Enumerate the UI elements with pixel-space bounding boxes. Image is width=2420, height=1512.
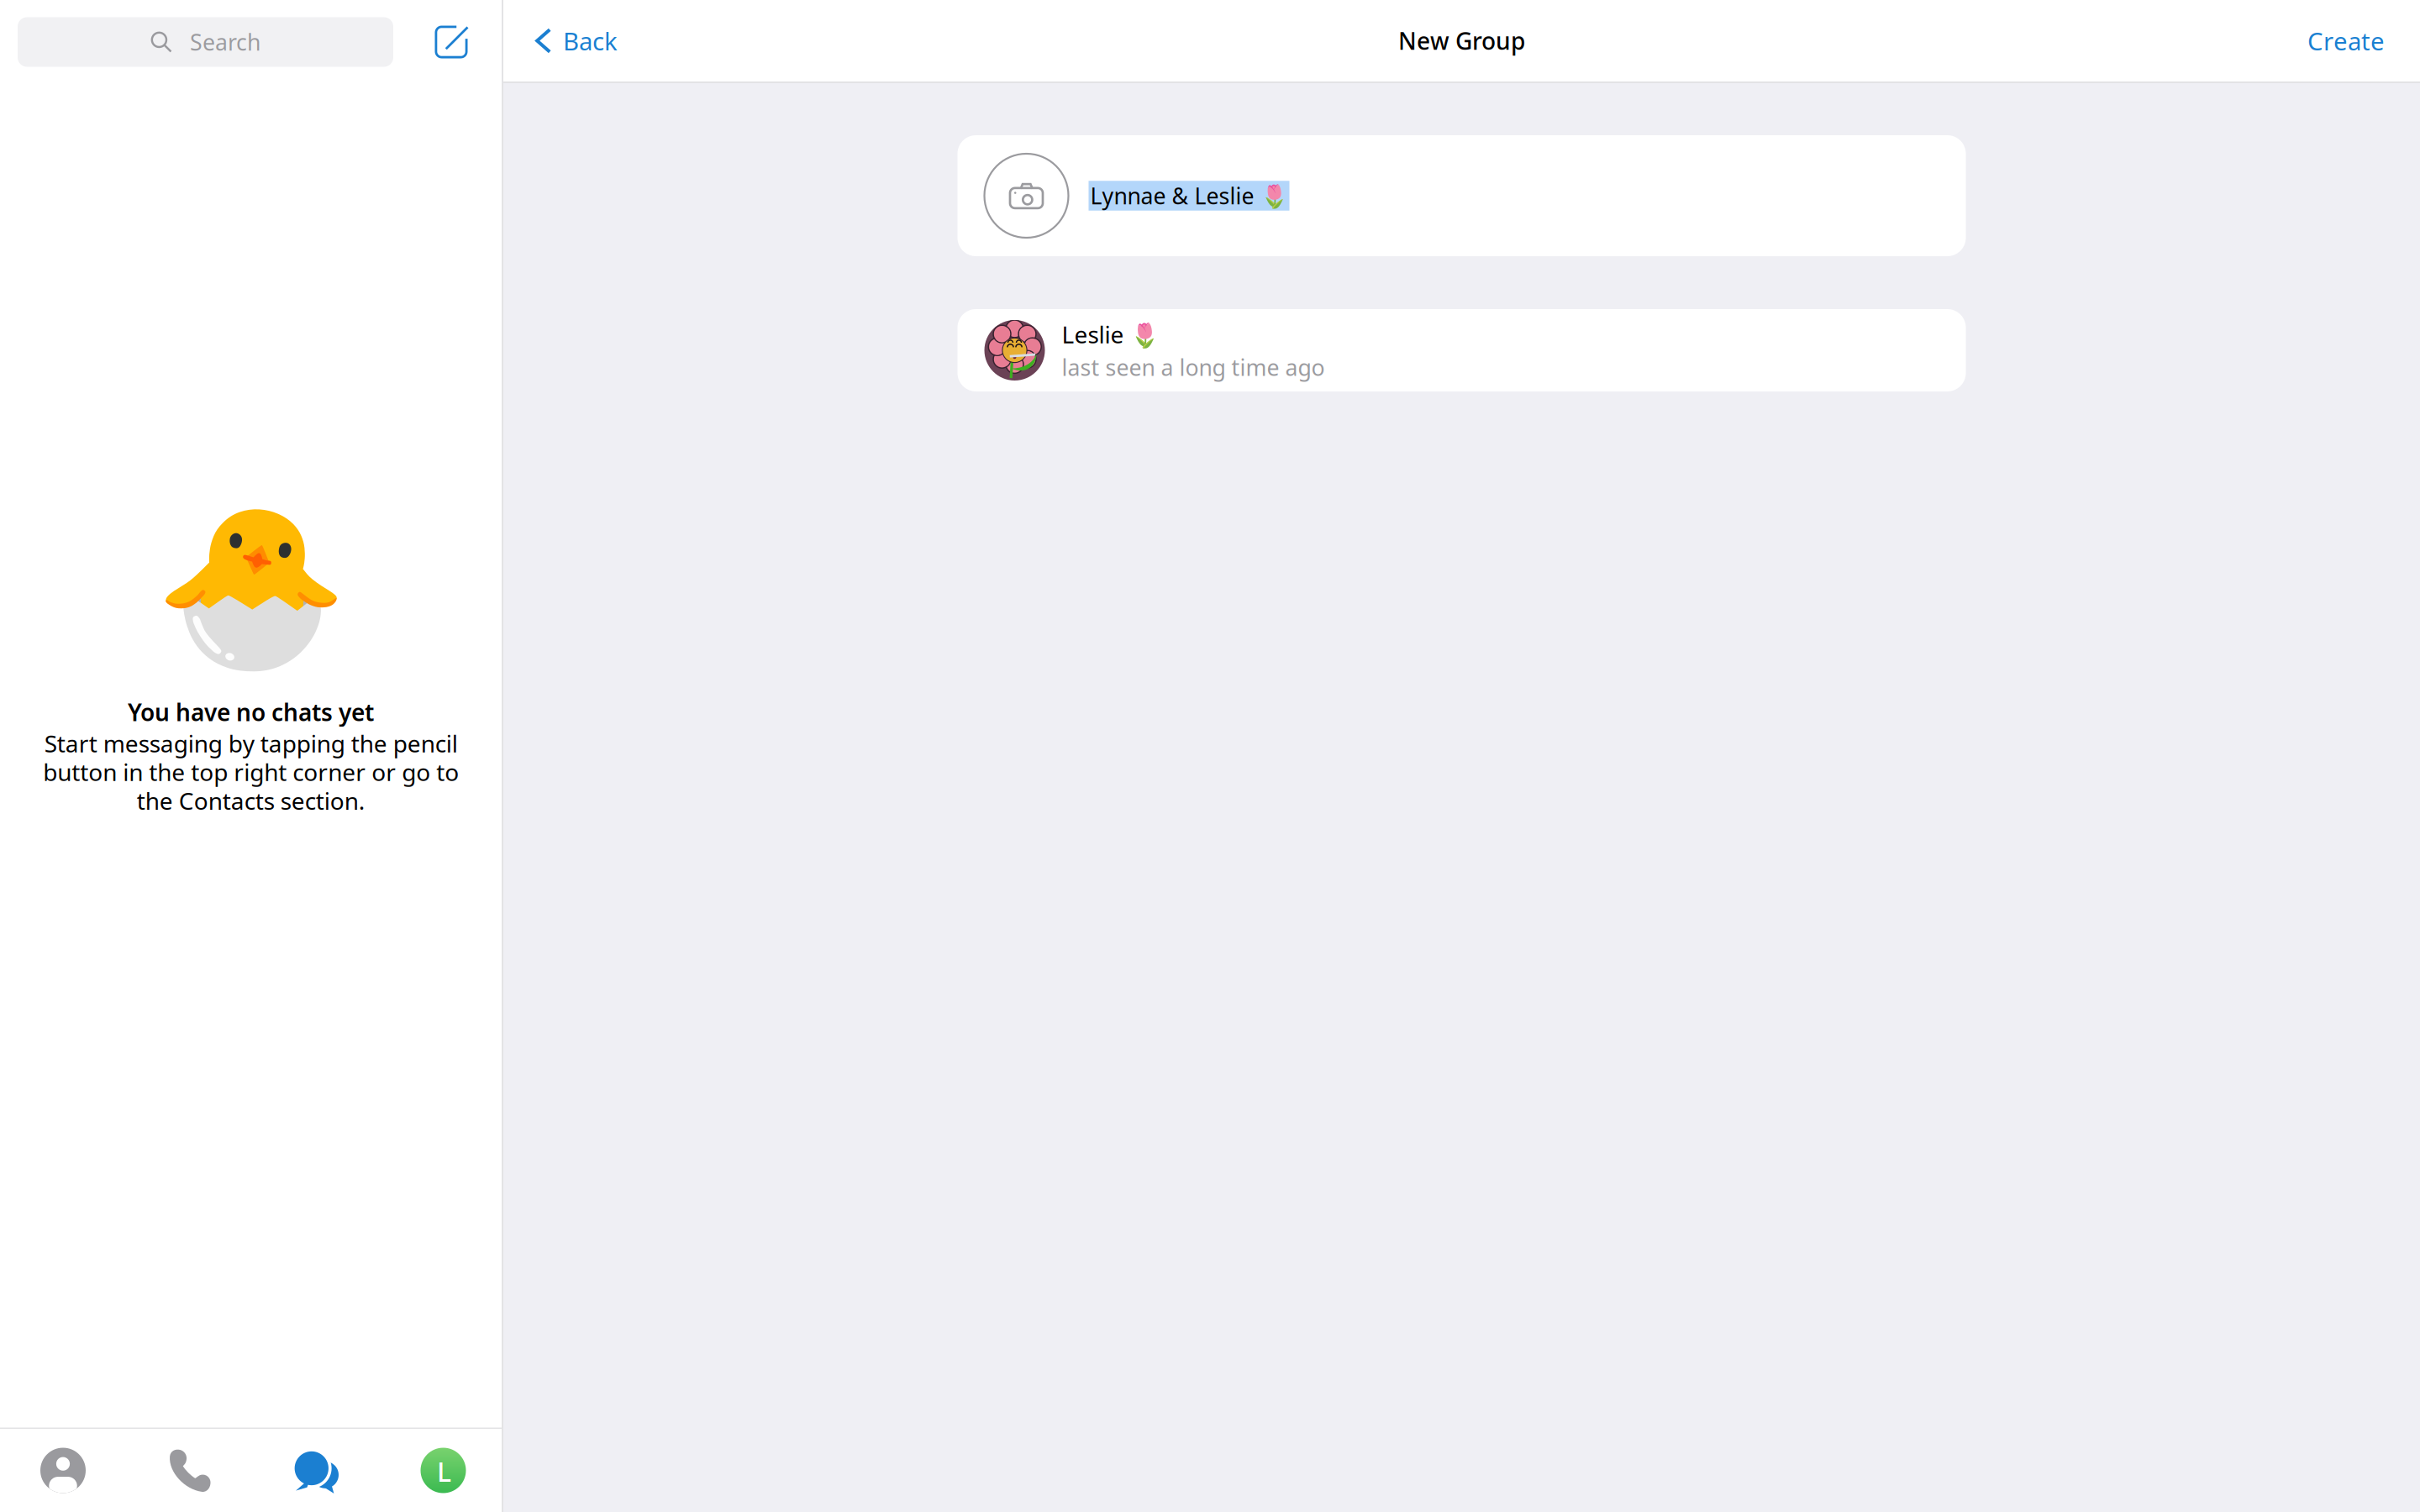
staticText: Start messaging by tapping the pencil bu… [43, 728, 459, 816]
button[interactable]: Set group photo [984, 154, 1068, 238]
button[interactable]: Lynnae & Leslie 🌷 [1089, 181, 1289, 211]
staticText: You have no chats yet [128, 696, 374, 728]
staticText: Back [563, 24, 618, 57]
staticText: Search [190, 27, 260, 57]
staticText: 🐣 [153, 498, 348, 677]
staticText: Leslie 🌷 [1062, 319, 1159, 350]
button[interactable]: Create [2272, 0, 2420, 81]
button[interactable]: Chats [252, 1429, 378, 1512]
button[interactable]: Contacts [0, 1429, 126, 1512]
staticText: Lynnae & Leslie 🌷 [1090, 181, 1288, 211]
button[interactable]: Leslie 🌷 [957, 309, 1966, 391]
button[interactable]: Back [503, 0, 636, 81]
button[interactable]: Calls [126, 1429, 252, 1512]
button[interactable]: Settings [378, 1429, 502, 1512]
staticText: L [437, 1453, 451, 1489]
button[interactable]: Search [18, 17, 393, 67]
staticText: New Group [1398, 25, 1525, 56]
staticText: last seen a long time ago [1062, 352, 1325, 382]
button[interactable]: Compose [418, 8, 485, 76]
staticText: Create [2307, 24, 2385, 57]
